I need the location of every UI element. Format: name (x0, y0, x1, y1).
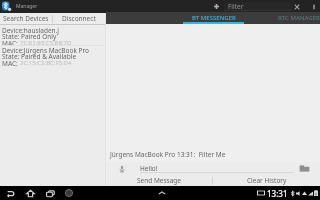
button[interactable]: Send Message (106, 175, 212, 186)
staticText: 3C:15:C2:BC:F5:D4 (20, 59, 72, 67)
staticText: Manager (16, 3, 38, 10)
staticText: State: Paired Only (2, 32, 57, 41)
button[interactable]: Home (24, 187, 36, 199)
staticText: Disconnect (62, 14, 96, 23)
staticText: MAC: (2, 39, 18, 48)
button[interactable]: Voice input (117, 164, 126, 173)
button[interactable]: Screenshot (64, 188, 74, 198)
staticText: Send Message (137, 176, 182, 185)
staticText: RTC MANAGER (278, 14, 320, 22)
staticText: BT MESSENGER (192, 14, 236, 22)
button[interactable]: Device:hausladen.j (0, 26, 105, 44)
button[interactable]: Disconnect (53, 13, 105, 24)
button[interactable]: BT MESSENGER (183, 12, 244, 24)
staticText: 7C:61:93:C5:B8:7D (20, 39, 72, 47)
button[interactable]: Add (212, 2, 221, 11)
staticText: 13:31 (267, 188, 288, 199)
staticText: Filter (228, 2, 244, 11)
staticText: State: Paired & Available (2, 52, 77, 61)
button[interactable]: Search Devices (0, 13, 52, 24)
button[interactable]: Device:Jürgens MacBook Pro (0, 46, 105, 64)
button[interactable]: Clear History (213, 175, 320, 186)
button[interactable]: Recent apps (44, 187, 56, 199)
staticText: Device:Jürgens MacBook Pro (2, 46, 90, 55)
button[interactable]: More options (309, 2, 318, 11)
staticText: MAC: (2, 59, 18, 68)
staticText: Jürgens MacBook Pro 13:31: Filter Me (110, 150, 226, 159)
staticText: Search Devices (3, 14, 49, 23)
button[interactable]: Show notifications (156, 187, 168, 199)
button[interactable]: Clear search (292, 2, 301, 11)
staticText: Clear History (247, 176, 287, 185)
button[interactable]: Back (4, 187, 16, 199)
button[interactable]: RTC MANAGER (277, 12, 320, 24)
staticText: Device:hausladen.j (2, 26, 60, 35)
button[interactable]: Attach file (298, 162, 311, 175)
staticText: Hello! (140, 164, 158, 173)
